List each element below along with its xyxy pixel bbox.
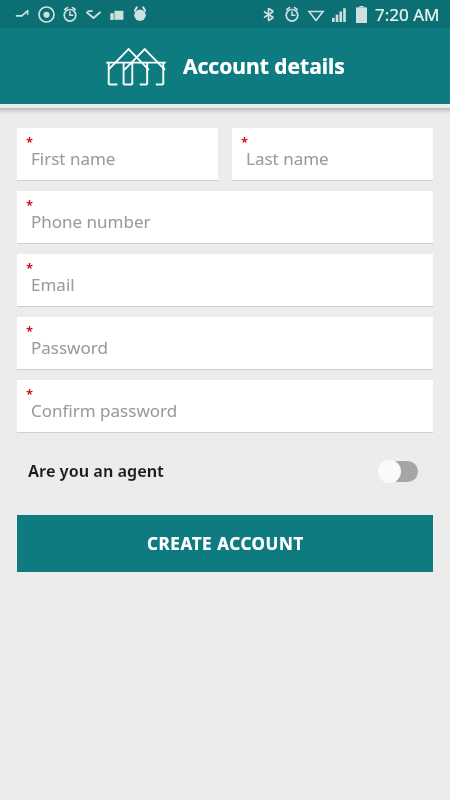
staticText: Phone number: [31, 210, 151, 233]
button[interactable]: *: [17, 191, 433, 244]
staticText: *: [26, 133, 34, 151]
button[interactable]: *: [17, 380, 433, 433]
button[interactable]: *: [17, 128, 218, 181]
staticText: Password: [31, 336, 108, 359]
button[interactable]: Are you an agent: [0, 447, 450, 495]
staticText: *: [26, 322, 34, 340]
button[interactable]: *: [17, 317, 433, 370]
staticText: *: [241, 133, 249, 151]
staticText: Last name: [246, 147, 329, 170]
other: Are you an agent toggle: [378, 458, 422, 484]
button[interactable]: *: [17, 254, 433, 307]
button[interactable]: *: [232, 128, 433, 181]
staticText: Confirm password: [31, 399, 178, 422]
staticText: *: [26, 259, 34, 277]
staticText: 7:20 AM: [375, 3, 440, 26]
button[interactable]: CREATE ACCOUNT: [17, 515, 433, 572]
staticText: *: [26, 385, 34, 403]
staticText: *: [26, 196, 34, 214]
staticText: Account details: [183, 52, 345, 81]
staticText: Are you an agent: [28, 460, 165, 482]
staticText: CREATE ACCOUNT: [147, 532, 304, 555]
staticText: First name: [31, 147, 116, 170]
staticText: Email: [31, 273, 75, 296]
